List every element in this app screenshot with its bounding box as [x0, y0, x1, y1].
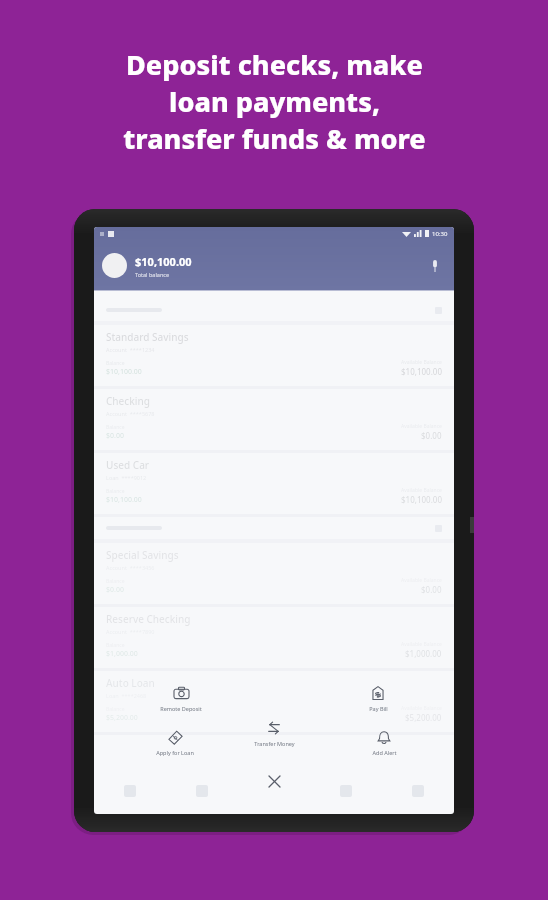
staticText: $0.00 [106, 431, 124, 441]
staticText: transfer funds & more [123, 120, 426, 157]
button[interactable]: Tab 3 [238, 768, 310, 814]
staticText: $10,100.00 [135, 254, 192, 269]
button[interactable]: Remote Deposit [150, 682, 212, 714]
staticText: Checking [106, 394, 151, 408]
staticText: Apply for Loan [156, 749, 194, 756]
button[interactable]: Transfer Money [243, 717, 305, 749]
staticText: Balance [106, 488, 125, 495]
staticText: $10,100.00 [106, 495, 142, 505]
button[interactable]: Auto Loan [94, 671, 454, 732]
button[interactable]: Add Alert [353, 726, 415, 758]
staticText: Used Car [106, 458, 150, 472]
staticText: $1,000.00 [106, 649, 138, 659]
staticText: Loan ****9012 [106, 474, 147, 481]
button[interactable]: Profile [102, 253, 127, 278]
staticText: Balance [106, 360, 125, 367]
staticText: Available Balance [401, 423, 442, 430]
staticText: Standard Savings [106, 330, 189, 344]
button[interactable]: Tab 5 [382, 768, 454, 814]
staticText: Pay Bill [369, 705, 388, 712]
button[interactable]: Close [262, 769, 286, 793]
staticText: Transfer Money [254, 740, 295, 747]
staticText: Total balance [135, 271, 170, 278]
staticText: Available Balance [401, 359, 442, 366]
button[interactable]: Tab 2 [166, 768, 238, 814]
staticText: Available Balance [401, 487, 442, 494]
staticText: $0.00 [421, 584, 442, 595]
staticText: 10:30 [432, 230, 448, 238]
staticText: Reserve Checking [106, 612, 191, 626]
staticText: loan payments, [169, 83, 380, 120]
staticText: Balance [106, 424, 125, 431]
button[interactable]: Pay Bill [347, 682, 409, 714]
button[interactable]: Apply for Loan [144, 726, 206, 758]
staticText: Account ****1234 [106, 346, 155, 353]
staticText: Deposit checks, make [126, 46, 423, 83]
staticText: Add Alert [372, 749, 397, 756]
staticText: $5,200.00 [106, 713, 138, 723]
staticText: $10,100.00 [401, 494, 442, 505]
staticText: $10,100.00 [106, 367, 142, 377]
staticText: Special Savings [106, 548, 179, 562]
staticText: Auto Loan [106, 676, 155, 690]
staticText: $0.00 [421, 430, 442, 441]
staticText: $1,000.00 [405, 648, 442, 659]
staticText: Account ****5678 [106, 410, 155, 417]
button[interactable]: Tab 4 [310, 768, 382, 814]
staticText: $5,200.00 [405, 712, 442, 723]
button[interactable]: Voice search [426, 257, 444, 275]
staticText: $0.00 [106, 585, 124, 595]
staticText: $10,100.00 [401, 366, 442, 377]
staticText: Remote Deposit [160, 705, 202, 712]
button[interactable]: Standard Savings [94, 325, 454, 386]
button[interactable]: Tab 1 [94, 768, 166, 814]
